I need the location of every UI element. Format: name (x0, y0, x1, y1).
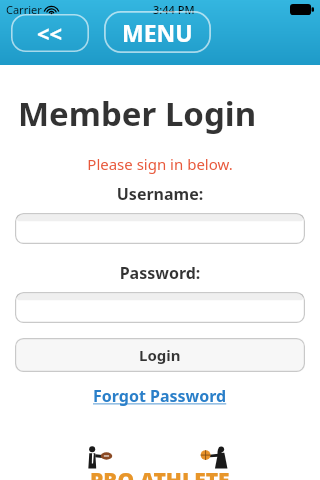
button[interactable] (15, 213, 305, 244)
button[interactable]: MENU (104, 11, 211, 53)
staticText: 3:44 PM (153, 2, 195, 17)
staticText: Member Login (18, 91, 257, 136)
button[interactable]: Forgot Password (87, 382, 233, 410)
other: Pro Athlete logo (75, 444, 245, 480)
button[interactable]: Back (11, 14, 89, 52)
staticText: PRO ATHLETE (90, 466, 230, 480)
staticText: Password: (0, 262, 320, 284)
staticText: Please sign in below. (0, 154, 320, 174)
staticText: << (37, 18, 63, 48)
button[interactable] (15, 292, 305, 323)
staticText: Forgot Password (93, 385, 227, 407)
button[interactable]: Login (15, 338, 305, 372)
staticText: MENU (122, 17, 193, 48)
staticText: Username: (0, 183, 320, 205)
staticText: Login (139, 345, 181, 365)
staticText: Carrier (6, 2, 42, 17)
